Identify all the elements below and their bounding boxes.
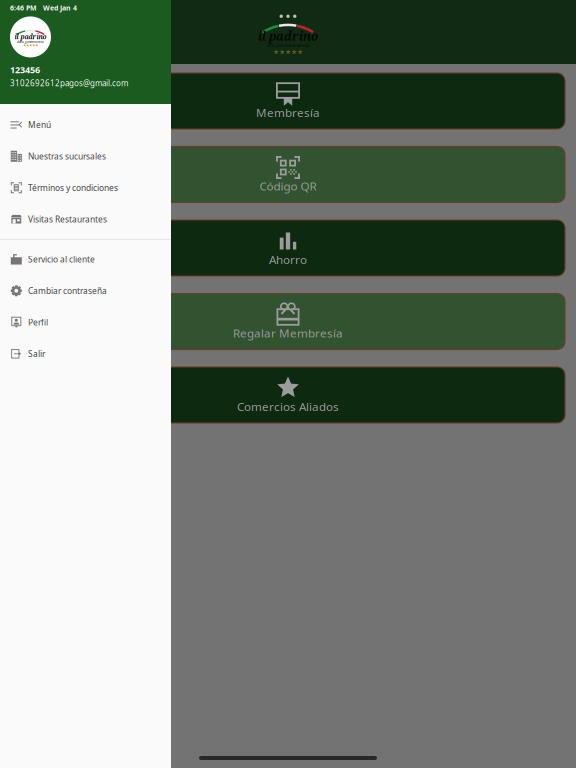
staticText: Cambiar contraseña bbox=[28, 285, 107, 296]
button[interactable]: Código QR bbox=[11, 146, 565, 202]
staticText: ★★★★★ bbox=[23, 43, 38, 47]
staticText: Regalar Membresía bbox=[233, 325, 343, 341]
staticText: Wed Jan 4 bbox=[43, 3, 77, 12]
button[interactable]: Servicio al cliente bbox=[0, 243, 171, 275]
staticText: il padrino bbox=[258, 28, 318, 44]
button[interactable]: Salir bbox=[0, 338, 171, 369]
staticText: Visitas Restaurantes bbox=[28, 213, 107, 225]
staticText: ★★★★★ bbox=[273, 48, 303, 56]
button[interactable]: Perfil bbox=[0, 306, 171, 338]
staticText: 3102692612pagos@gmail.com bbox=[10, 78, 128, 89]
button[interactable]: Membresía bbox=[11, 73, 565, 129]
staticText: Nuestras sucursales bbox=[28, 150, 106, 162]
staticText: Código QR bbox=[259, 178, 316, 194]
staticText: il padrino bbox=[14, 32, 46, 41]
button[interactable]: Regalar Membresía bbox=[11, 293, 565, 349]
button[interactable]: Ahorro bbox=[11, 220, 565, 276]
staticText: 123456 bbox=[10, 63, 40, 76]
staticText: della gastronomia italiana bbox=[266, 43, 309, 48]
button[interactable]: Cambiar contraseña bbox=[0, 275, 171, 306]
staticText: Perfil bbox=[28, 316, 48, 328]
button[interactable]: Comercios Aliados bbox=[11, 367, 565, 423]
staticText: Salir bbox=[28, 348, 45, 359]
button[interactable]: Nuestras sucursales bbox=[0, 140, 171, 172]
button[interactable]: Menú bbox=[0, 109, 171, 140]
button[interactable]: Términos y condiciones bbox=[0, 172, 171, 203]
staticText: Menú bbox=[28, 119, 51, 130]
staticText: 6:46 PM bbox=[10, 3, 37, 12]
staticText: Membresía bbox=[256, 105, 320, 120]
button[interactable]: Visitas Restaurantes bbox=[0, 203, 171, 235]
staticText: Servicio al cliente bbox=[28, 253, 95, 265]
staticText: Comercios Aliados bbox=[237, 399, 339, 414]
staticText: Términos y condiciones bbox=[28, 182, 118, 193]
staticText: Ahorro bbox=[269, 252, 307, 267]
staticText: della gastronomia bbox=[17, 40, 44, 44]
